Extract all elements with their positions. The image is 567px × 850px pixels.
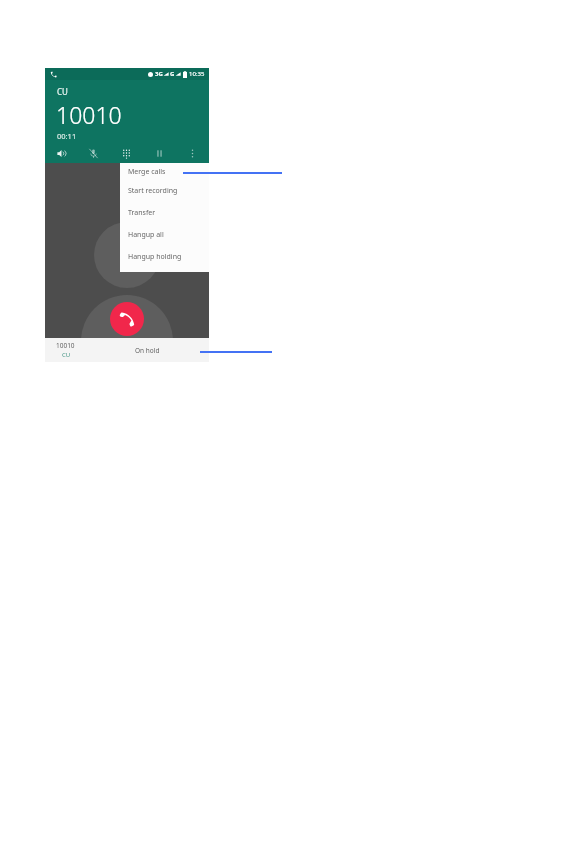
staticText: CU (57, 86, 68, 97)
button[interactable]: Hold (143, 144, 176, 163)
button[interactable]: 10010 (45, 338, 209, 362)
button[interactable]: Speaker (45, 144, 77, 163)
staticText: Hangup all (128, 230, 164, 240)
staticText: 10:35 (189, 70, 205, 78)
staticText: 3G (155, 70, 163, 78)
button[interactable]: More options (176, 144, 209, 163)
staticText: Transfer (128, 208, 156, 218)
staticText: Start recording (128, 186, 178, 196)
button[interactable]: Start recording (120, 180, 209, 202)
staticText: Hangup holding (128, 252, 182, 262)
button[interactable]: Hangup all (120, 224, 209, 246)
staticText: Merge calls (128, 167, 166, 177)
staticText: CU (62, 351, 71, 359)
staticText: G (170, 70, 175, 78)
staticText: 00:11 (57, 131, 77, 141)
button[interactable]: End call (110, 302, 144, 336)
button[interactable]: Dialpad (110, 144, 143, 163)
button[interactable]: Mute (77, 144, 110, 163)
staticText: 10010 (56, 341, 75, 350)
button[interactable]: Transfer (120, 202, 209, 224)
button[interactable]: Hangup holding (120, 246, 209, 268)
staticText: 10010 (56, 99, 122, 130)
staticText: On hold (135, 346, 160, 355)
button[interactable]: Merge calls (120, 163, 209, 180)
